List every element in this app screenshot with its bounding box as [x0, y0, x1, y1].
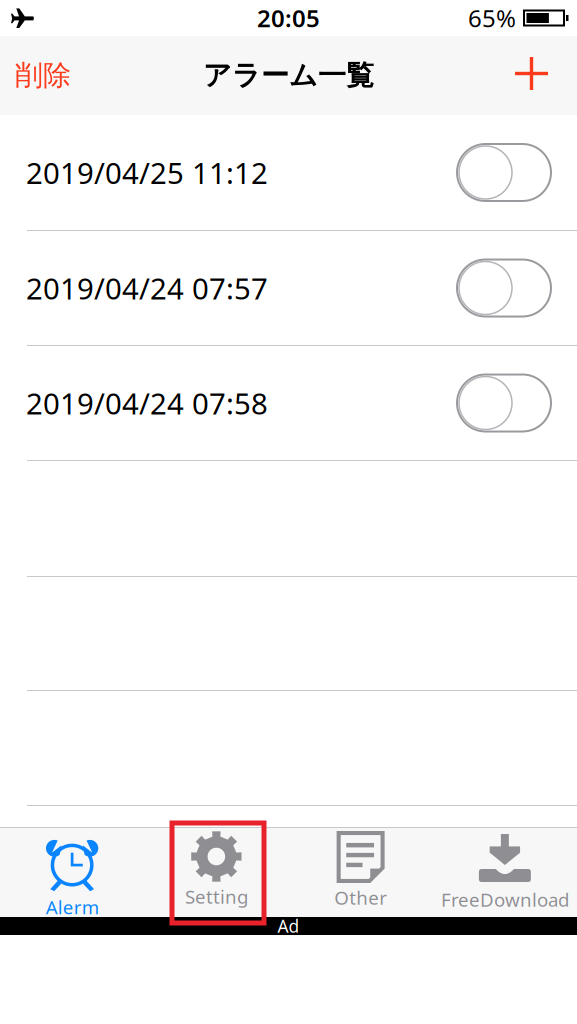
staticText: 2019/04/25 11:12 — [26, 153, 268, 192]
button[interactable]: Other — [288, 828, 433, 917]
staticText: 2019/04/24 07:57 — [26, 268, 268, 307]
button[interactable]: 2019/04/24 07:57 — [0, 231, 577, 346]
button[interactable]: Alerm — [0, 828, 144, 917]
staticText: Other — [334, 885, 387, 910]
button[interactable]: 削除 — [15, 50, 71, 101]
staticText: アラーム一覧 — [203, 58, 374, 93]
button[interactable]: Setting — [144, 828, 288, 917]
staticText: 20:05 — [257, 2, 320, 34]
button[interactable]: FreeDownload — [433, 828, 577, 917]
staticText: 65% — [468, 2, 516, 34]
staticText: Alerm — [46, 895, 99, 919]
button[interactable]: 2019/04/24 07:58 — [0, 346, 577, 461]
staticText: 2019/04/24 07:58 — [26, 383, 268, 422]
button[interactable]: 2019/04/25 11:12 — [0, 115, 577, 231]
staticText: Setting — [185, 884, 248, 909]
staticText: 削除 — [15, 58, 71, 93]
button[interactable]: Add alarm — [505, 57, 558, 94]
staticText: FreeDownload — [441, 887, 569, 912]
staticText: Ad — [277, 914, 299, 937]
